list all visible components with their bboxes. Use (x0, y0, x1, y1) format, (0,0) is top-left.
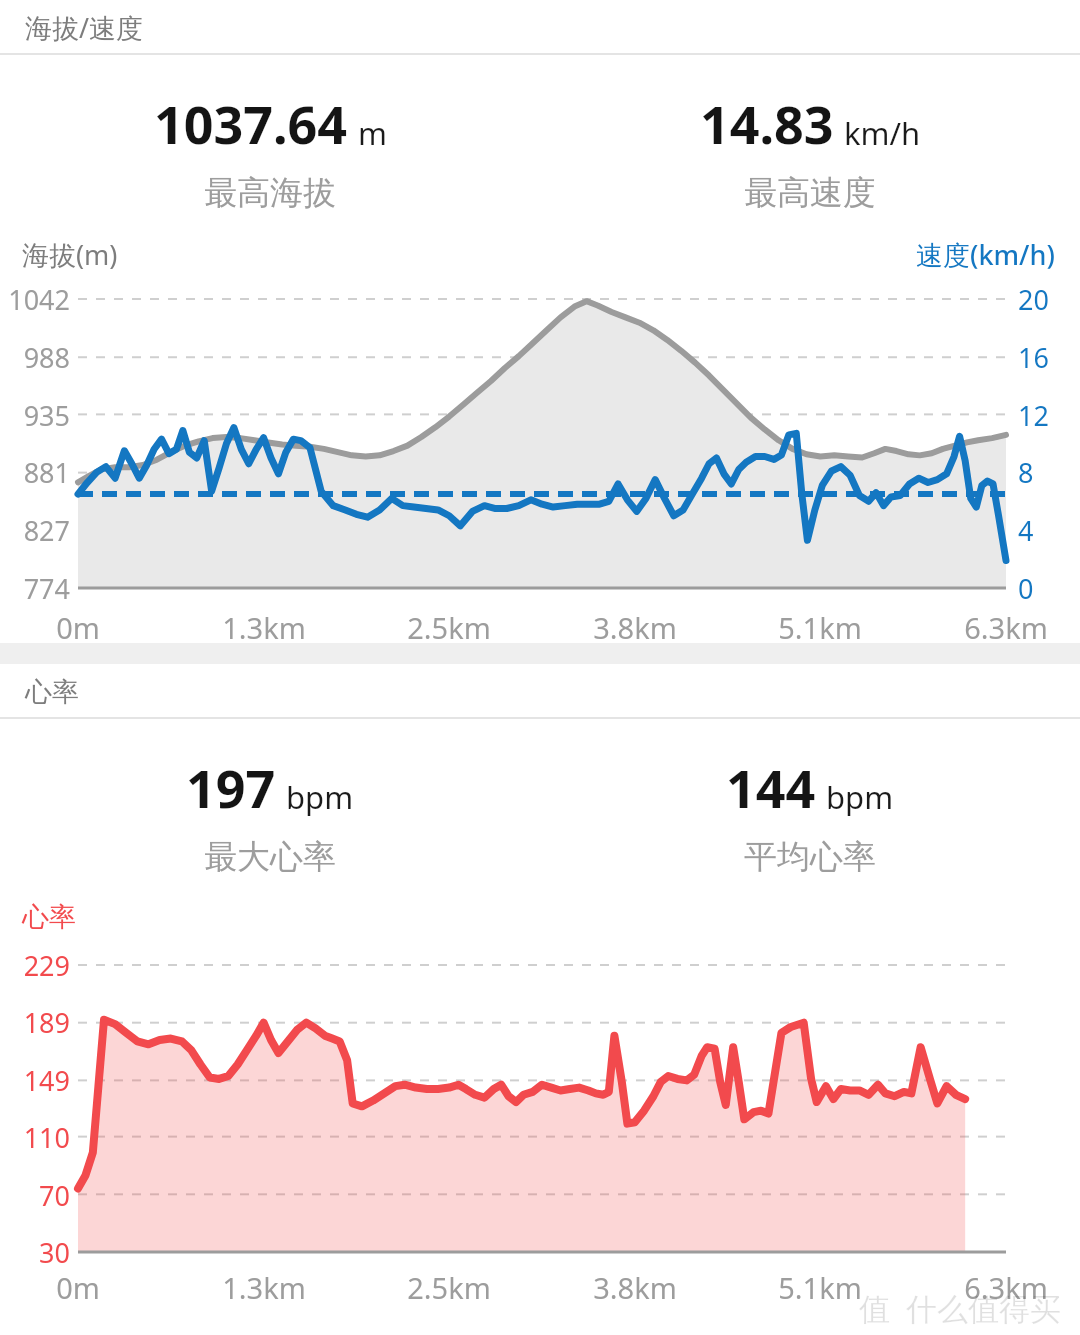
staticText: 最高海拔 (204, 172, 336, 214)
staticText: 774 (0, 570, 70, 607)
staticText: 心率 (25, 675, 79, 709)
staticText: 5.1km (755, 1268, 885, 1307)
staticText: 988 (0, 339, 70, 376)
button[interactable]: 144 (540, 719, 1080, 890)
button[interactable]: 197 (0, 719, 540, 890)
staticText: 70 (0, 1177, 70, 1214)
staticText: 平均心率 (744, 836, 876, 878)
staticText: bpm (286, 776, 354, 818)
staticText: 0m (13, 608, 143, 643)
staticText: 5.1km (755, 608, 885, 643)
staticText: 2.5km (384, 608, 514, 643)
button[interactable]: 14.83 (540, 55, 1080, 226)
staticText: 8 (1018, 454, 1034, 491)
staticText: 4 (1018, 512, 1034, 549)
staticText: bpm (826, 776, 894, 818)
button[interactable]: 1037.64 (0, 55, 540, 226)
staticText: 6.3km (941, 1268, 1071, 1307)
staticText: m (358, 112, 387, 154)
button[interactable]: 海拔/速度 (0, 0, 1080, 55)
staticText: 2.5km (384, 1268, 514, 1307)
staticText: 0 (1018, 570, 1034, 607)
staticText: 16 (1018, 339, 1049, 376)
staticText: km/h (844, 112, 921, 154)
staticText: 14.83 (700, 88, 834, 159)
button[interactable]: 心率 (0, 664, 1080, 719)
staticText: 0m (13, 1268, 143, 1307)
staticText: 3.8km (570, 608, 700, 643)
staticText: 827 (0, 512, 70, 549)
staticText: 149 (0, 1062, 70, 1099)
staticText: 6.3km (941, 608, 1071, 643)
staticText: 144 (726, 752, 816, 823)
staticText: 1.3km (199, 608, 329, 643)
staticText: 最高速度 (744, 172, 876, 214)
staticText: 197 (186, 752, 276, 823)
staticText: 110 (0, 1119, 70, 1156)
staticText: 229 (0, 947, 70, 984)
staticText: 心率 (22, 900, 76, 934)
staticText: 最大心率 (204, 836, 336, 878)
staticText: 1.3km (199, 1268, 329, 1307)
staticText: 1042 (0, 281, 70, 318)
staticText: 3.8km (570, 1268, 700, 1307)
staticText: 189 (0, 1004, 70, 1041)
staticText: 海拔(m) (22, 236, 118, 273)
staticText: 881 (0, 454, 70, 491)
staticText: 值 什么值得买 (859, 1287, 1062, 1329)
staticText: 935 (0, 397, 70, 434)
staticText: 海拔/速度 (25, 9, 144, 46)
staticText: 20 (1018, 281, 1049, 318)
staticText: 1037.64 (154, 88, 348, 159)
staticText: 12 (1018, 397, 1049, 434)
staticText: 30 (0, 1234, 70, 1271)
staticText: 速度(km/h) (916, 236, 1055, 273)
